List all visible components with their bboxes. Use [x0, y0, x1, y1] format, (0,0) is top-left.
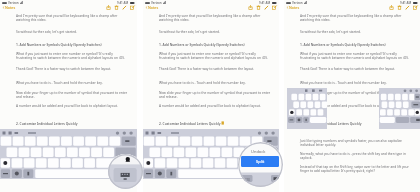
staticText: 2. Customize Individual Letters Quickly	[300, 122, 362, 126]
staticText: Verizon	[151, 1, 162, 5]
button[interactable]: Keyboard left half	[287, 88, 327, 129]
button[interactable]: Back to Notes	[285, 4, 301, 11]
staticText: Notes	[5, 5, 16, 10]
button[interactable]: Delete	[397, 5, 402, 10]
button[interactable]: Keyboard right half	[379, 88, 420, 129]
staticText: Normally, what you have to do is - press…	[300, 152, 406, 160]
staticText: What you have to do is - Touch and hold …	[159, 81, 246, 85]
staticText: And I'm pretty sure that you will be key…	[159, 14, 261, 22]
staticText: Undock	[251, 149, 266, 154]
button[interactable]: Split	[241, 156, 279, 167]
staticText: 2. Customize Individual Letters Quickly	[159, 122, 221, 126]
staticText: Verizon	[292, 1, 303, 5]
button[interactable]: Delete	[114, 5, 119, 10]
staticText: So without further ado, let's get starte…	[159, 30, 220, 34]
button[interactable]: Compose	[405, 5, 410, 10]
staticText: 9:41 AM	[117, 1, 129, 5]
staticText: 9:41 AM	[259, 1, 271, 5]
button[interactable]: Compose	[264, 5, 269, 10]
button[interactable]: Keyboard	[143, 129, 279, 179]
staticText: Thank God! There is a faster way to swit…	[159, 67, 255, 71]
button[interactable]: Share	[106, 5, 111, 10]
button[interactable]: New note	[272, 5, 277, 10]
staticText: Now slide your finger up to the number o…	[159, 91, 271, 99]
staticText: Now slide your finger up to the number o…	[300, 91, 412, 99]
staticText: 2. Customize Individual Letters Quickly	[16, 122, 78, 126]
button[interactable]: Delete	[256, 5, 261, 10]
staticText: Thank God! There is a faster way to swit…	[300, 67, 396, 71]
staticText: So without further ado, let's get starte…	[300, 30, 361, 34]
staticText: What you have to do is - Touch and hold …	[16, 81, 103, 85]
staticText: 1. Add Numbers or Symbols Quickly (Speed…	[159, 43, 245, 47]
staticText: 9:41 AM	[400, 1, 412, 5]
button[interactable]: Share	[389, 5, 394, 10]
staticText: Notes	[289, 5, 300, 10]
button[interactable]: Compose	[122, 5, 127, 10]
staticText: Just like typing numbers and symbols fas…	[300, 139, 402, 147]
staticText: And I'm pretty sure that you will be key…	[16, 14, 118, 22]
staticText: Verizon	[8, 1, 19, 5]
staticText: What if you just want to enter one numbe…	[300, 52, 409, 60]
button[interactable]: Share	[248, 5, 253, 10]
button[interactable]: New note	[413, 5, 418, 10]
staticText: What if you just want to enter one numbe…	[159, 52, 268, 60]
staticText: 1. Add Numbers or Symbols Quickly (Speed…	[300, 43, 386, 47]
staticText: 1. Add Numbers or Symbols Quickly (Speed…	[16, 43, 102, 47]
staticText: 7123	[242, 177, 250, 182]
staticText: What if you just want to enter one numbe…	[16, 52, 125, 60]
button[interactable]: Back to Notes	[144, 4, 160, 11]
button[interactable]: Back to Notes	[1, 4, 17, 11]
staticText: Thank God! There is a faster way to swit…	[16, 67, 112, 71]
staticText: So without further ado, let's get starte…	[16, 30, 77, 34]
staticText: Split	[256, 159, 265, 164]
staticText: A number would be added and you will be …	[16, 104, 118, 108]
staticText: Instead of that tap on the Shift key, sw…	[300, 165, 409, 173]
staticText: A number would be added and you will be …	[159, 104, 261, 108]
staticText: And I'm pretty sure that you will be key…	[300, 14, 402, 22]
staticText: A number would be added and you will be …	[300, 104, 402, 108]
button[interactable]: New note	[130, 5, 135, 10]
button[interactable]: Keyboard	[0, 129, 137, 179]
staticText: What you have to do is - Touch and hold …	[300, 81, 387, 85]
staticText: Notes	[148, 5, 159, 10]
staticText: Now slide your finger up to the number o…	[16, 91, 128, 99]
